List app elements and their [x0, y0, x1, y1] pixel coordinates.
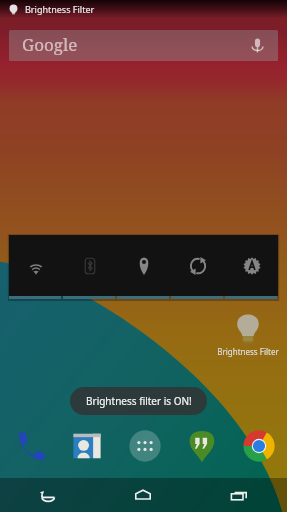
staticText: Brightness Filter	[217, 346, 279, 357]
button[interactable]: Sync	[171, 235, 225, 296]
staticText: Brightness Filter	[25, 3, 95, 15]
button[interactable]: Auto brightness	[225, 235, 278, 296]
button[interactable]: Wi-Fi	[9, 235, 63, 296]
button[interactable]: Bluetooth	[63, 235, 117, 296]
button[interactable]: Hangouts	[173, 424, 230, 468]
button[interactable]: Chrome	[230, 424, 287, 468]
button[interactable]: People	[58, 424, 116, 468]
button[interactable]: Brightness Filter	[215, 312, 281, 374]
button[interactable]: Google	[9, 30, 278, 61]
button[interactable]: Phone	[0, 424, 58, 468]
staticText: Brightness filter is ON!	[86, 394, 192, 408]
staticText: Google	[22, 33, 78, 56]
button[interactable]: Location	[117, 235, 171, 296]
button[interactable]: Apps	[116, 424, 173, 468]
button[interactable]: Recents	[191, 478, 287, 512]
button[interactable]: Back	[0, 478, 95, 512]
button[interactable]: Home	[95, 478, 191, 512]
